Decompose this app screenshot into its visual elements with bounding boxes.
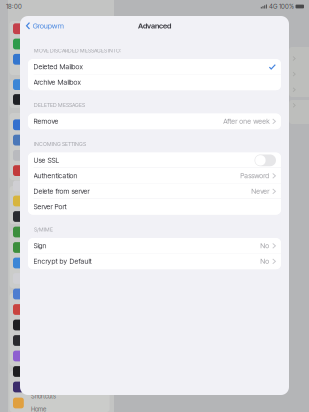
staticText: 18:00 [6, 3, 22, 10]
staticText: Home [31, 405, 46, 412]
staticText: Shortcuts [31, 392, 56, 400]
button[interactable]: Server Port [28, 199, 281, 215]
button[interactable]: Sign [28, 238, 281, 254]
staticText: No [260, 242, 269, 250]
staticText: Never [251, 187, 269, 196]
staticText: 4G [269, 3, 277, 10]
staticText: MOVE DISCARDED MESSAGES INTO: [34, 47, 121, 54]
staticText: After one week [223, 117, 269, 126]
staticText: S/MIME [34, 226, 53, 233]
staticText: Advanced [138, 21, 171, 30]
button[interactable]: Remove [28, 114, 281, 129]
staticText: Deleted Mailbox [33, 63, 82, 71]
staticText: 100% [279, 3, 294, 10]
staticText: Remove [33, 117, 58, 126]
staticText: INCOMING SETTINGS [34, 141, 86, 147]
staticText: Password [240, 172, 269, 180]
staticText: No [260, 257, 269, 266]
staticText: Archive Mailbox [33, 78, 80, 87]
button[interactable]: Groupwm [20, 18, 69, 33]
staticText: Sign [33, 242, 46, 250]
staticText: Encrypt by Default [33, 257, 91, 266]
button[interactable]: Encrypt by Default [28, 254, 281, 269]
button[interactable]: Archive Mailbox [28, 75, 281, 90]
staticText: Server Port [33, 203, 66, 211]
staticText: Groupwm [33, 21, 64, 30]
button[interactable]: Use SSL [28, 153, 281, 168]
staticText: Use SSL [33, 156, 59, 165]
button[interactable]: Authentication [28, 168, 281, 184]
staticText: Delete from server [33, 187, 89, 196]
button[interactable]: Deleted Mailbox [28, 59, 281, 75]
staticText: Authentication [33, 172, 77, 180]
staticText: DELETED MESSAGES [34, 102, 85, 108]
button[interactable]: Delete from server [28, 184, 281, 199]
